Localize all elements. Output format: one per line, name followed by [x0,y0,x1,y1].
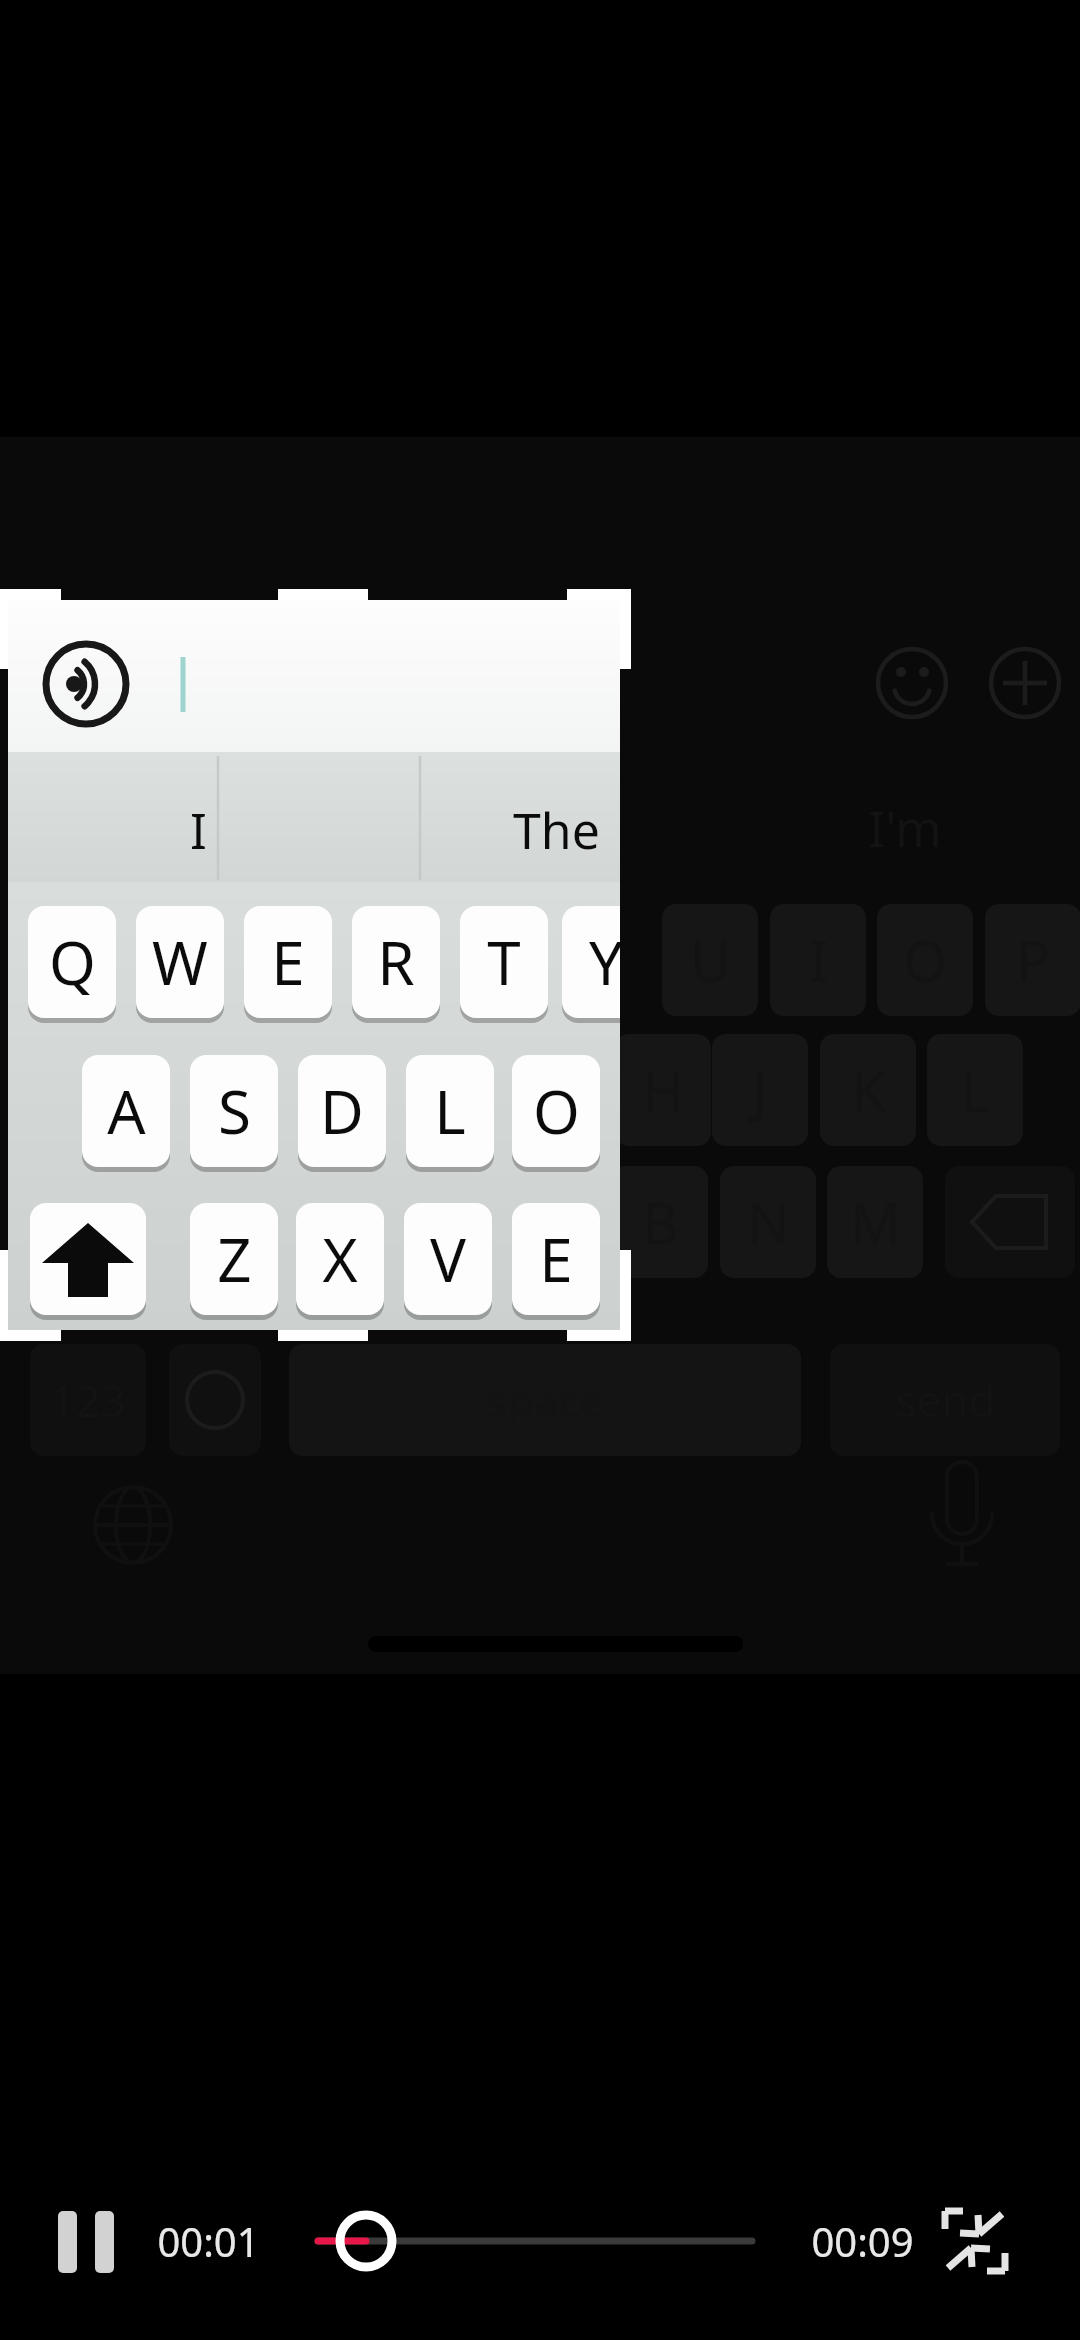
staticText: D [320,1070,364,1152]
button[interactable]: Pause [20,2185,150,2300]
staticText: 00:01 [157,2214,260,2268]
staticText: V [430,1218,466,1300]
button[interactable]: Exit full screen [935,2185,1050,2300]
button[interactable]: Video [0,437,1080,1674]
staticText: E [271,921,305,1003]
staticText: R [377,921,415,1003]
staticText: Z [217,1218,252,1300]
staticText: The [513,796,600,864]
staticText: T [487,921,521,1003]
staticText: Y [589,921,623,1003]
staticText: X [322,1218,358,1300]
staticText: L [434,1070,466,1152]
staticText: S [218,1070,251,1152]
staticText: A [107,1070,146,1152]
staticText: I [190,796,207,864]
staticText: E [539,1218,573,1300]
button[interactable]: Seek bar [290,2185,780,2300]
staticText: W [152,921,208,1003]
staticText: 00:09 [811,2214,914,2268]
staticText: O [533,1070,580,1152]
staticText: Q [49,921,96,1003]
